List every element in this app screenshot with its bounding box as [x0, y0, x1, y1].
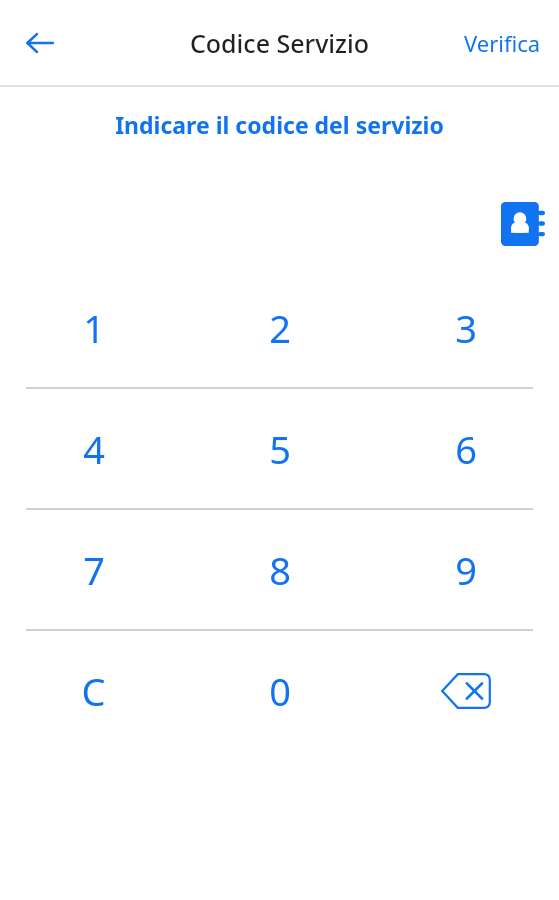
staticText: 2	[269, 302, 291, 354]
button[interactable]: Backspace	[373, 631, 559, 750]
button[interactable]: 8	[187, 510, 373, 629]
button[interactable]: 0	[187, 631, 373, 750]
button[interactable]: 4	[0, 389, 187, 508]
staticText: 1	[83, 302, 105, 354]
button[interactable]: 9	[373, 510, 559, 629]
button[interactable]: 1	[0, 268, 187, 387]
button[interactable]: 3	[373, 268, 559, 387]
button[interactable]: Verifica	[446, 14, 559, 72]
button[interactable]: Back	[12, 15, 68, 71]
button[interactable]: 6	[373, 389, 559, 508]
staticText: Codice Servizio	[0, 26, 559, 60]
staticText: 7	[83, 544, 105, 596]
button[interactable]: C	[0, 631, 187, 750]
staticText: C	[81, 665, 106, 717]
staticText: 8	[269, 544, 291, 596]
button[interactable]: 7	[0, 510, 187, 629]
staticText: 4	[83, 423, 105, 475]
staticText: 5	[269, 423, 291, 475]
staticText: Verifica	[464, 28, 541, 58]
staticText: 6	[455, 423, 477, 475]
button[interactable]: Choose from contacts	[495, 196, 551, 252]
staticText: Indicare il codice del servizio	[0, 109, 559, 140]
staticText: 0	[269, 665, 291, 717]
button[interactable]: 2	[187, 268, 373, 387]
button[interactable]: 5	[187, 389, 373, 508]
staticText: 9	[455, 544, 477, 596]
staticText: 3	[455, 302, 477, 354]
